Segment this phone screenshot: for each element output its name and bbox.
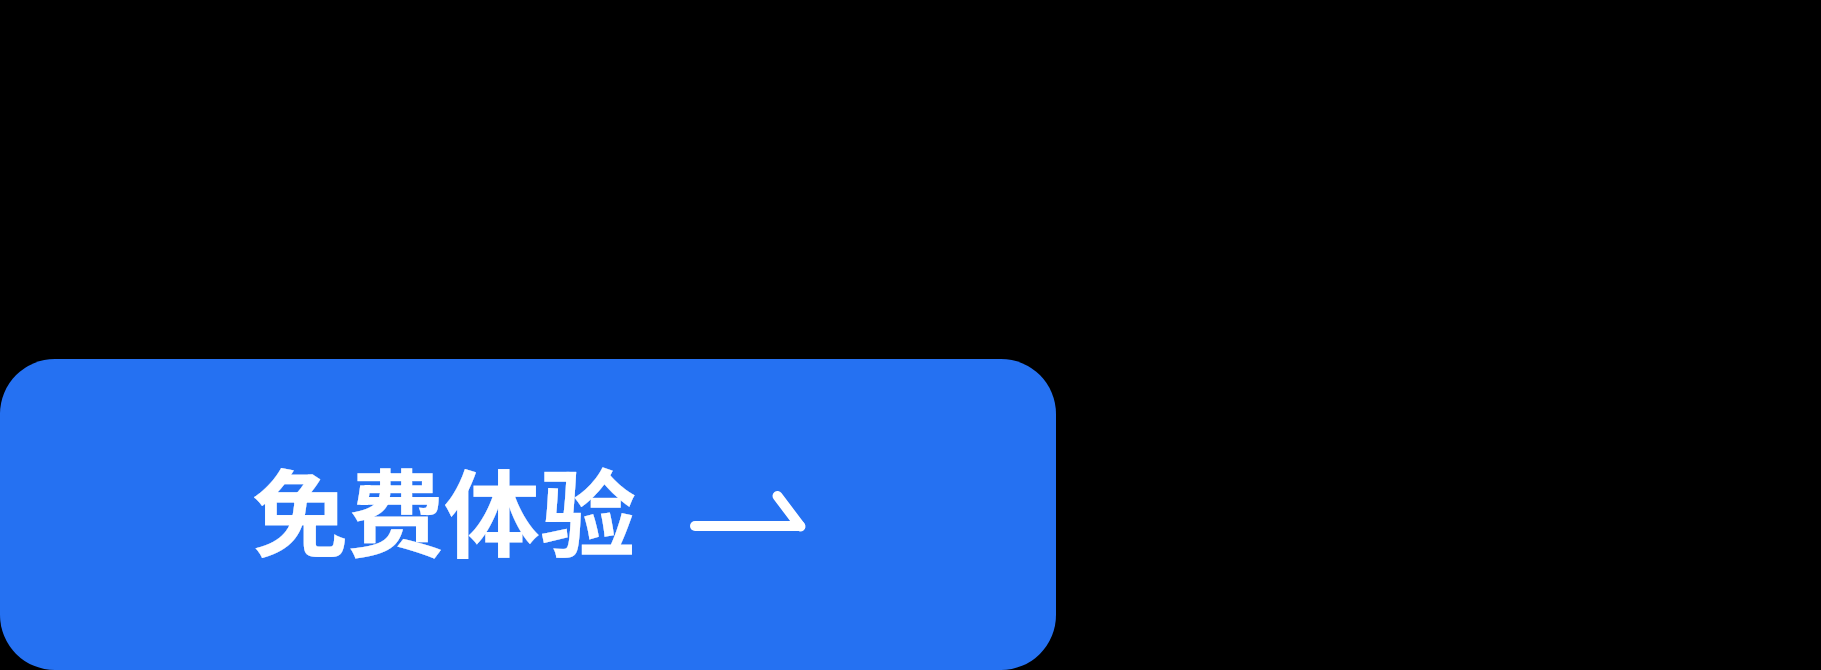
other: Start free trial [690,506,805,546]
button[interactable]: 免费体验 [0,359,1056,670]
staticText: 免费体验 [252,439,636,578]
